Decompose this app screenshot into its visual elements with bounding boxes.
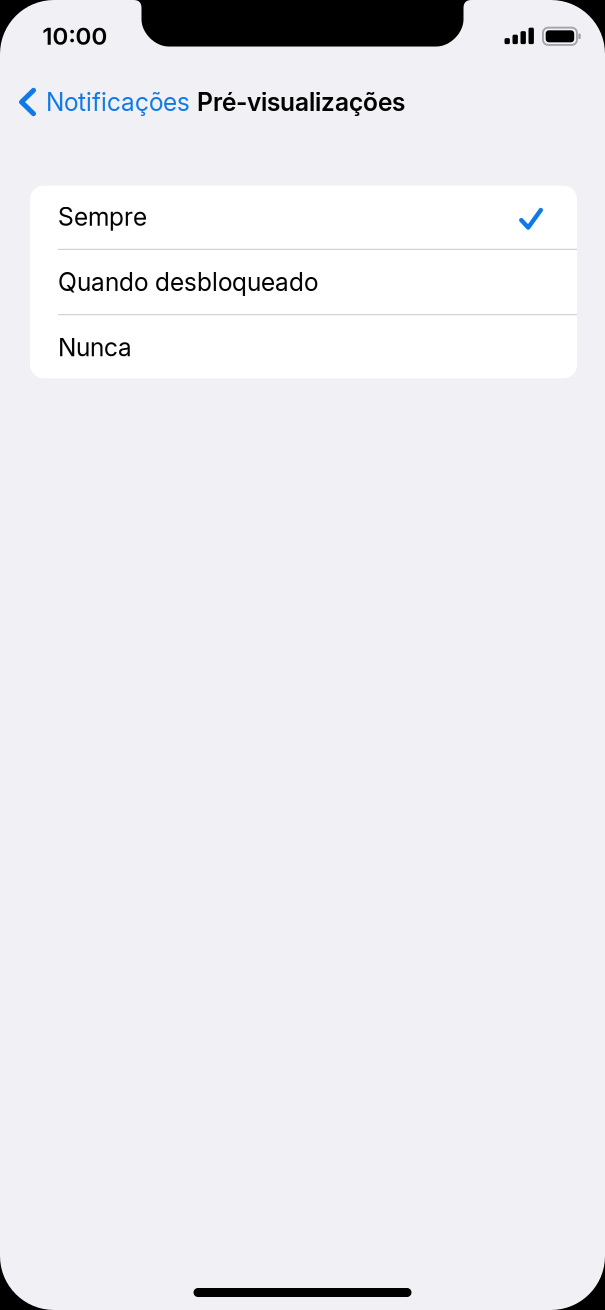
staticText: Nunca bbox=[58, 332, 132, 362]
staticText: Pré-visualizações bbox=[197, 87, 405, 117]
staticText: Sempre bbox=[58, 202, 147, 232]
button[interactable]: Notificações bbox=[0, 73, 197, 131]
button[interactable]: Nunca bbox=[30, 315, 577, 379]
staticText: 10:00 bbox=[42, 21, 107, 50]
staticText: Quando desbloqueado bbox=[58, 267, 318, 297]
button[interactable]: Sempre bbox=[30, 185, 577, 249]
staticText: Notificações bbox=[46, 87, 190, 117]
button[interactable]: Quando desbloqueado bbox=[30, 250, 577, 314]
